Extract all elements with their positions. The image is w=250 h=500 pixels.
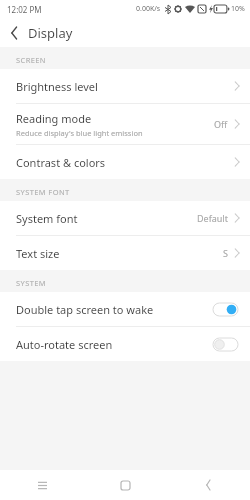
staticText: Reading mode [16,111,92,126]
staticText: SYSTEM [16,278,47,288]
staticText: Off [214,118,228,130]
button[interactable]: Double tap screen to wake [0,292,250,326]
staticText: 0.00K/s [136,4,161,14]
button[interactable]: Back [167,470,250,500]
staticText: Contrast & colors [16,155,106,170]
button[interactable]: Brightness level [0,69,250,103]
staticText: 10% [231,4,245,14]
button[interactable]: System font [0,201,250,235]
button[interactable]: Home [84,470,167,500]
staticText: Brightness level [16,79,98,94]
staticText: System font [16,211,78,226]
staticText: Text size [16,246,60,261]
button[interactable]: Back [0,19,28,47]
button[interactable]: Recent apps [0,470,84,500]
staticText: Default [197,212,228,224]
staticText: Reduce display's blue light emission [16,128,143,138]
staticText: 12:02 PM [7,4,42,15]
button[interactable]: Contrast & colors [0,145,250,179]
staticText: S [223,247,228,259]
button[interactable]: Text size [0,236,250,270]
staticText: Auto-rotate screen [16,337,213,352]
button[interactable]: Auto-rotate screen [0,327,250,361]
staticText: SYSTEM FONT [16,187,70,197]
button[interactable]: Reading mode [0,104,250,144]
staticText: SCREEN [16,55,46,65]
staticText: Double tap screen to wake [16,302,213,317]
staticText: Display [28,24,73,42]
